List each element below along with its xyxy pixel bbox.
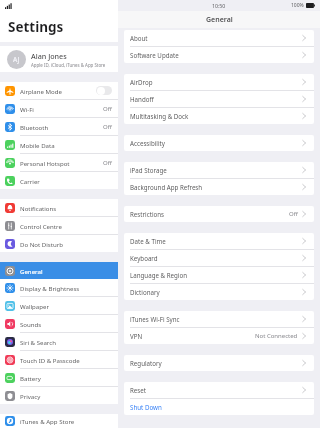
staticText: Siri & Search [20, 338, 112, 346]
staticText: Wi-Fi [20, 105, 103, 113]
staticText: Not Connected [255, 332, 298, 340]
button[interactable]: Reset [124, 382, 314, 398]
button[interactable]: VPN [124, 328, 314, 344]
button[interactable]: Sounds [0, 315, 118, 332]
button[interactable]: Date & Time [124, 233, 314, 249]
staticText: Control Centre [20, 222, 112, 230]
staticText: Apple ID, iCloud, iTunes & App Store [31, 62, 106, 68]
staticText: Notifications [20, 204, 112, 212]
button[interactable]: Display & Brightness [0, 279, 118, 296]
button[interactable]: Battery [0, 369, 118, 386]
staticText: Accessibility [130, 139, 301, 147]
staticText: Restrictions [130, 210, 289, 218]
staticText: Settings [8, 18, 64, 36]
staticText: Carrier [20, 177, 112, 185]
button[interactable]: Personal Hotspot [0, 154, 118, 171]
button[interactable]: Mobile Data [0, 136, 118, 153]
staticText: VPN [130, 332, 255, 340]
button[interactable]: Carrier [0, 172, 118, 189]
staticText: Airplane Mode [20, 87, 96, 95]
staticText: Mobile Data [20, 141, 112, 149]
staticText: Shut Down [130, 403, 308, 411]
button[interactable]: Touch ID & Passcode [0, 351, 118, 368]
staticText: Handoff [130, 95, 301, 103]
button[interactable]: General [0, 262, 118, 279]
staticText: 100% [291, 2, 304, 9]
staticText: Language & Region [130, 271, 301, 279]
button[interactable]: AJ [0, 46, 118, 72]
staticText: Touch ID & Passcode [20, 356, 112, 364]
staticText: iTunes & App Store [20, 417, 112, 425]
staticText: 10:50 [212, 2, 226, 9]
button[interactable]: Control Centre [0, 217, 118, 234]
button[interactable]: Language & Region [124, 267, 314, 283]
button[interactable]: Software Update [124, 47, 314, 63]
button[interactable]: Privacy [0, 387, 118, 404]
staticText: Dictionary [130, 288, 301, 296]
staticText: Personal Hotspot [20, 159, 103, 167]
staticText: Battery [20, 374, 112, 382]
button[interactable]: Wallpaper [0, 297, 118, 314]
button[interactable]: Notifications [0, 199, 118, 216]
staticText: General [20, 267, 112, 275]
staticText: Bluetooth [20, 123, 103, 131]
button[interactable]: Keyboard [124, 250, 314, 266]
button[interactable]: Bluetooth [0, 118, 118, 135]
staticText: AJ [13, 55, 20, 64]
staticText: Alan Jones [31, 51, 67, 61]
button[interactable]: Background App Refresh [124, 179, 314, 195]
staticText: Reset [130, 386, 301, 394]
staticText: About [130, 34, 301, 42]
staticText: Off [103, 159, 112, 167]
staticText: Multitasking & Dock [130, 112, 301, 120]
button[interactable]: iTunes & App Store [0, 414, 118, 428]
button[interactable]: Multitasking & Dock [124, 108, 314, 124]
staticText: Software Update [130, 51, 301, 59]
button[interactable]: Airplane Mode [0, 82, 118, 99]
staticText: Off [289, 210, 298, 218]
staticText: Sounds [20, 320, 112, 328]
button[interactable]: iTunes Wi-Fi Sync [124, 311, 314, 327]
staticText: Wallpaper [20, 302, 112, 310]
button[interactable]: Handoff [124, 91, 314, 107]
staticText: Do Not Disturb [20, 240, 112, 248]
staticText: iTunes Wi-Fi Sync [130, 315, 301, 323]
staticText: Regulatory [130, 359, 301, 367]
staticText: AirDrop [130, 78, 301, 86]
staticText: Keyboard [130, 254, 301, 262]
staticText: Privacy [20, 392, 112, 400]
staticText: Display & Brightness [20, 284, 112, 292]
staticText: Off [103, 123, 112, 131]
button[interactable]: Wi-Fi [0, 100, 118, 117]
staticText: Off [103, 105, 112, 113]
button[interactable]: Regulatory [124, 355, 314, 371]
staticText: General [206, 15, 233, 25]
button[interactable]: iPad Storage [124, 162, 314, 178]
staticText: iPad Storage [130, 166, 301, 174]
staticText: Background App Refresh [130, 183, 301, 191]
button[interactable]: About [124, 30, 314, 46]
button[interactable]: Dictionary [124, 284, 314, 300]
staticText: Date & Time [130, 237, 301, 245]
button[interactable]: Accessibility [124, 135, 314, 151]
button[interactable]: Do Not Disturb [0, 235, 118, 252]
button[interactable]: Siri & Search [0, 333, 118, 350]
button[interactable]: Restrictions [124, 206, 314, 222]
button[interactable]: Shut Down [124, 399, 314, 415]
button[interactable]: AirDrop [124, 74, 314, 90]
